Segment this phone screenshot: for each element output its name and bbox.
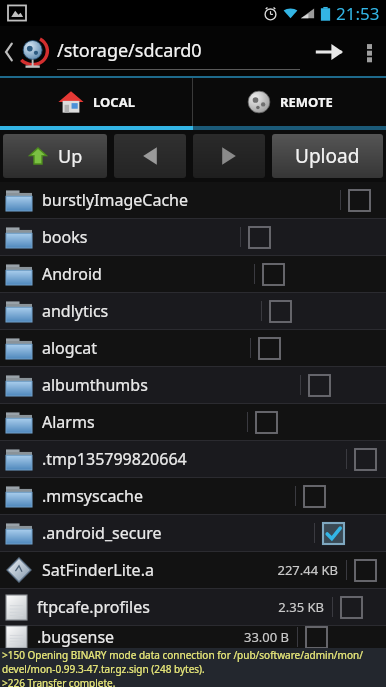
button[interactable]: ftpcafe.profiles xyxy=(0,589,386,625)
button[interactable]: Not selected xyxy=(349,190,370,211)
staticText: >226 Transfer complete. xyxy=(2,676,116,687)
button[interactable]: More options xyxy=(352,26,386,78)
button[interactable]: albumthumbs xyxy=(0,367,386,403)
button[interactable]: Alarms xyxy=(0,404,386,440)
staticText: Upload xyxy=(295,143,360,169)
button[interactable]: .android_secure xyxy=(0,515,386,551)
button[interactable]: Not selected xyxy=(256,412,277,433)
button[interactable]: Back xyxy=(114,134,186,178)
button[interactable]: Not selected xyxy=(304,486,325,507)
staticText: alogcat xyxy=(42,337,98,359)
button[interactable]: Not selected xyxy=(355,560,376,581)
button[interactable]: Up xyxy=(3,134,107,178)
staticText: REMOTE xyxy=(280,93,333,111)
staticText: 2.35 KB xyxy=(278,598,324,616)
staticText: /storage/sdcard0 xyxy=(57,38,202,63)
button[interactable]: Not selected xyxy=(355,449,376,470)
button[interactable]: Selected xyxy=(323,523,344,544)
staticText: 227.44 KB xyxy=(277,561,338,579)
staticText: devel/mon-0.99.3-47.tar.gz.sign (248 byt… xyxy=(2,662,205,676)
button[interactable]: alogcat xyxy=(0,330,386,366)
staticText: .mmsyscache xyxy=(42,485,143,507)
button[interactable]: Go xyxy=(306,26,352,78)
staticText: .android_secure xyxy=(42,522,162,544)
staticText: Up xyxy=(58,144,83,169)
button[interactable]: Not selected xyxy=(270,301,291,322)
button[interactable]: Forward xyxy=(193,134,265,178)
button[interactable]: Android xyxy=(0,256,386,292)
staticText: SatFinderLite.apk xyxy=(42,559,159,581)
staticText: burstlyImageCache xyxy=(42,189,188,211)
button[interactable]: Navigate up xyxy=(0,26,53,78)
button[interactable]: Not selected xyxy=(249,227,270,248)
staticText: andlytics xyxy=(42,300,109,322)
button[interactable]: Upload xyxy=(272,134,383,178)
button[interactable]: LOCAL xyxy=(0,78,192,126)
staticText: albumthumbs xyxy=(42,374,148,396)
staticText: Android xyxy=(42,263,102,285)
button[interactable]: andlytics xyxy=(0,293,386,329)
button[interactable]: >150 Opening BINARY mode data connection… xyxy=(0,648,386,687)
staticText: .bugsense xyxy=(37,626,115,648)
button[interactable]: /storage/sdcard0 xyxy=(57,26,300,78)
button[interactable]: burstlyImageCache xyxy=(0,182,386,218)
button[interactable]: .bugsense xyxy=(0,626,386,648)
staticText: .tmp1357998206644 xyxy=(42,448,194,470)
staticText: Alarms xyxy=(42,411,95,433)
button[interactable]: Not selected xyxy=(341,597,362,618)
button[interactable]: Not selected xyxy=(263,264,284,285)
staticText: >150 Opening BINARY mode data connection… xyxy=(2,648,363,662)
button[interactable]: SatFinderLite.apk xyxy=(0,552,386,588)
staticText: ftpcafe.profiles xyxy=(37,596,150,618)
button[interactable]: Not selected xyxy=(306,627,327,648)
staticText: 33.00 B xyxy=(243,628,289,646)
button[interactable]: REMOTE xyxy=(193,78,386,126)
staticText: 21:53 xyxy=(336,2,380,25)
button[interactable]: Not selected xyxy=(309,375,330,396)
staticText: LOCAL xyxy=(93,93,135,111)
button[interactable]: books xyxy=(0,219,386,255)
button[interactable]: .tmp1357998206644 xyxy=(0,441,386,477)
button[interactable]: .mmsyscache xyxy=(0,478,386,514)
staticText: books xyxy=(42,226,88,248)
button[interactable]: Not selected xyxy=(259,338,280,359)
